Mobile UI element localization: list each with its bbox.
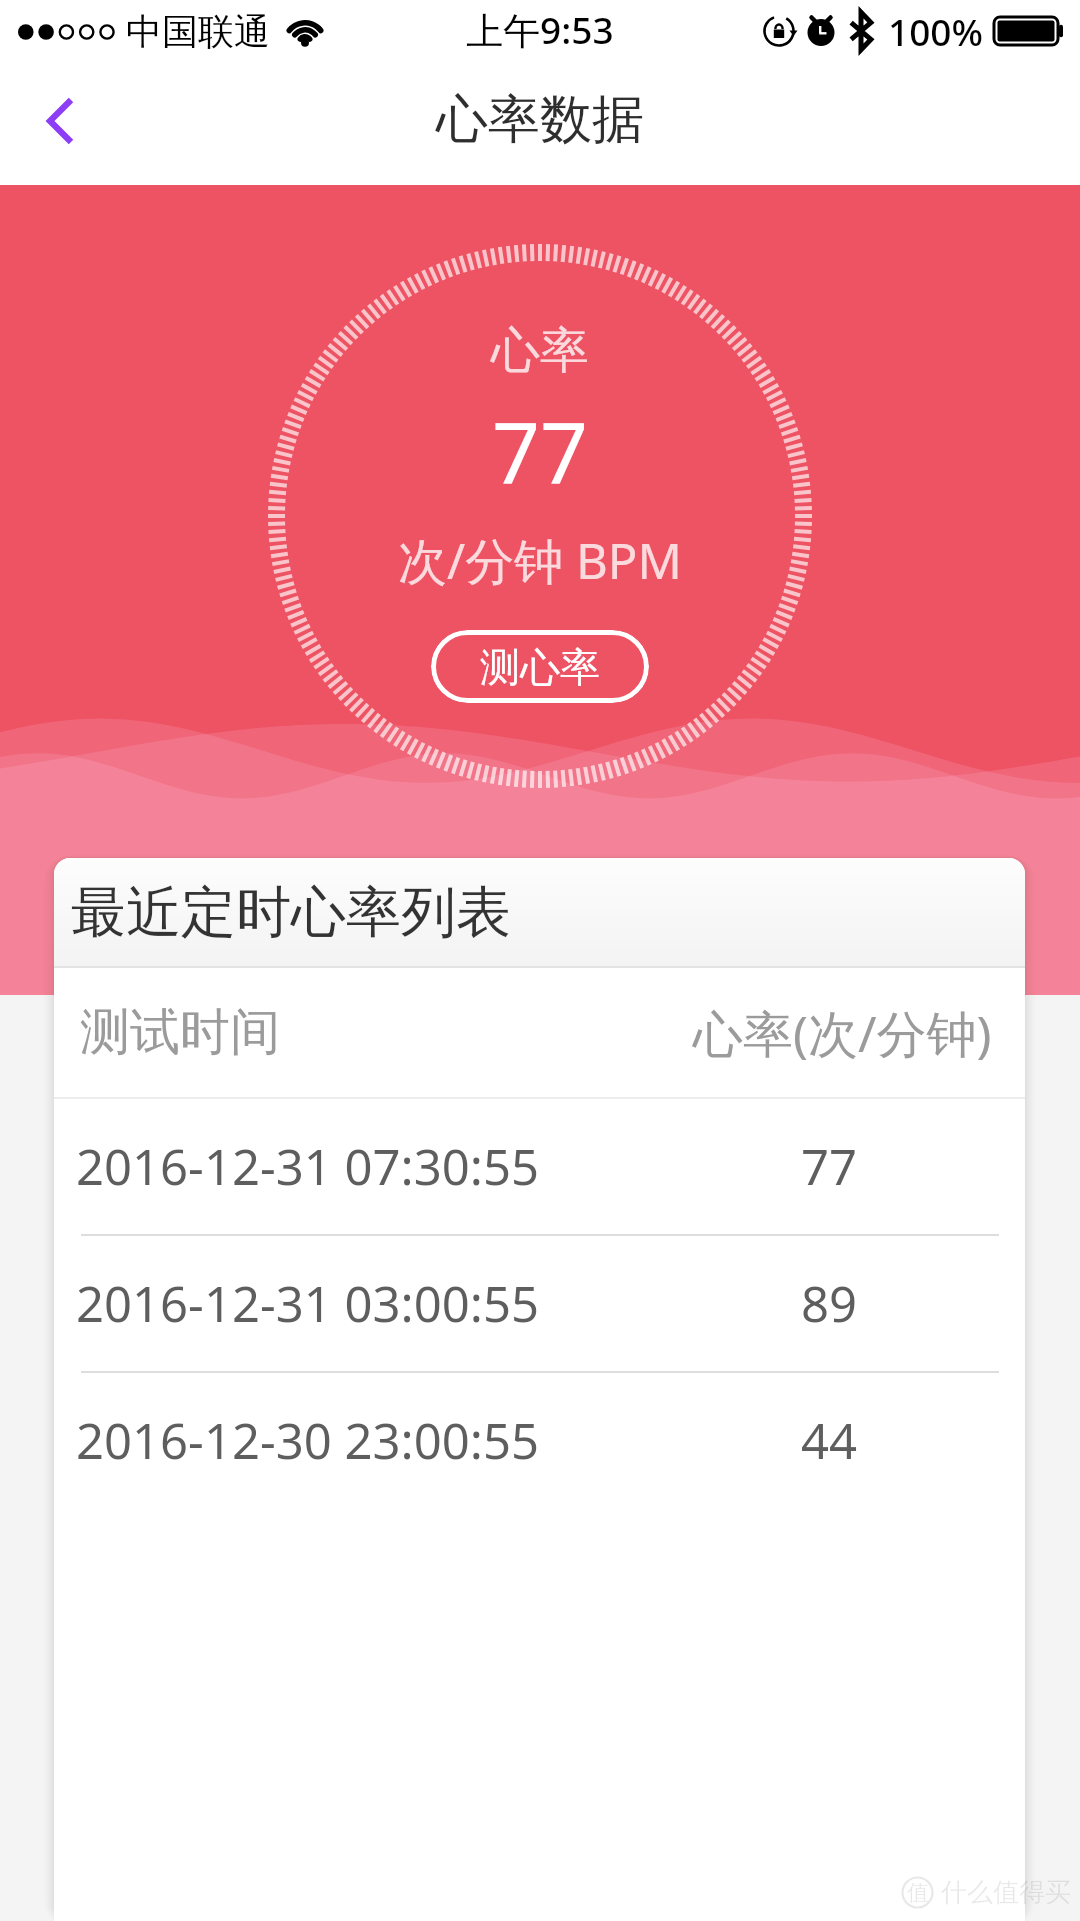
staticText: 2016-12-31 07:30:55 — [76, 1133, 539, 1200]
staticText: 上午9:53 — [466, 4, 614, 55]
staticText: 次/分钟 BPM — [398, 527, 682, 594]
staticText: 什么值得买 — [941, 1876, 1071, 1909]
staticText: 100% — [888, 6, 984, 56]
staticText: 心率 — [491, 320, 589, 382]
staticText: 值 — [907, 1879, 929, 1907]
staticText: 心率(次/分钟) — [693, 999, 992, 1067]
staticText: 89 — [801, 1270, 858, 1337]
staticText: 最近定时心率列表 — [71, 878, 511, 947]
staticText: 中国联通 — [126, 9, 270, 54]
button[interactable]: 2016-12-30 23:00:55 — [54, 1373, 1025, 1508]
button[interactable]: 2016-12-31 03:00:55 — [54, 1236, 1025, 1371]
staticText: 心率数据 — [436, 87, 644, 153]
button[interactable]: Back — [0, 65, 118, 183]
staticText: 2016-12-31 03:00:55 — [76, 1270, 539, 1337]
staticText: 2016-12-30 23:00:55 — [76, 1407, 539, 1474]
staticText: 77 — [492, 393, 589, 507]
staticText: 77 — [801, 1133, 858, 1200]
staticText: 44 — [801, 1407, 858, 1474]
staticText: 测心率 — [480, 642, 600, 692]
button[interactable]: 测心率 — [431, 630, 649, 703]
staticText: 测试时间 — [80, 1001, 280, 1064]
button[interactable]: 2016-12-31 07:30:55 — [54, 1099, 1025, 1234]
